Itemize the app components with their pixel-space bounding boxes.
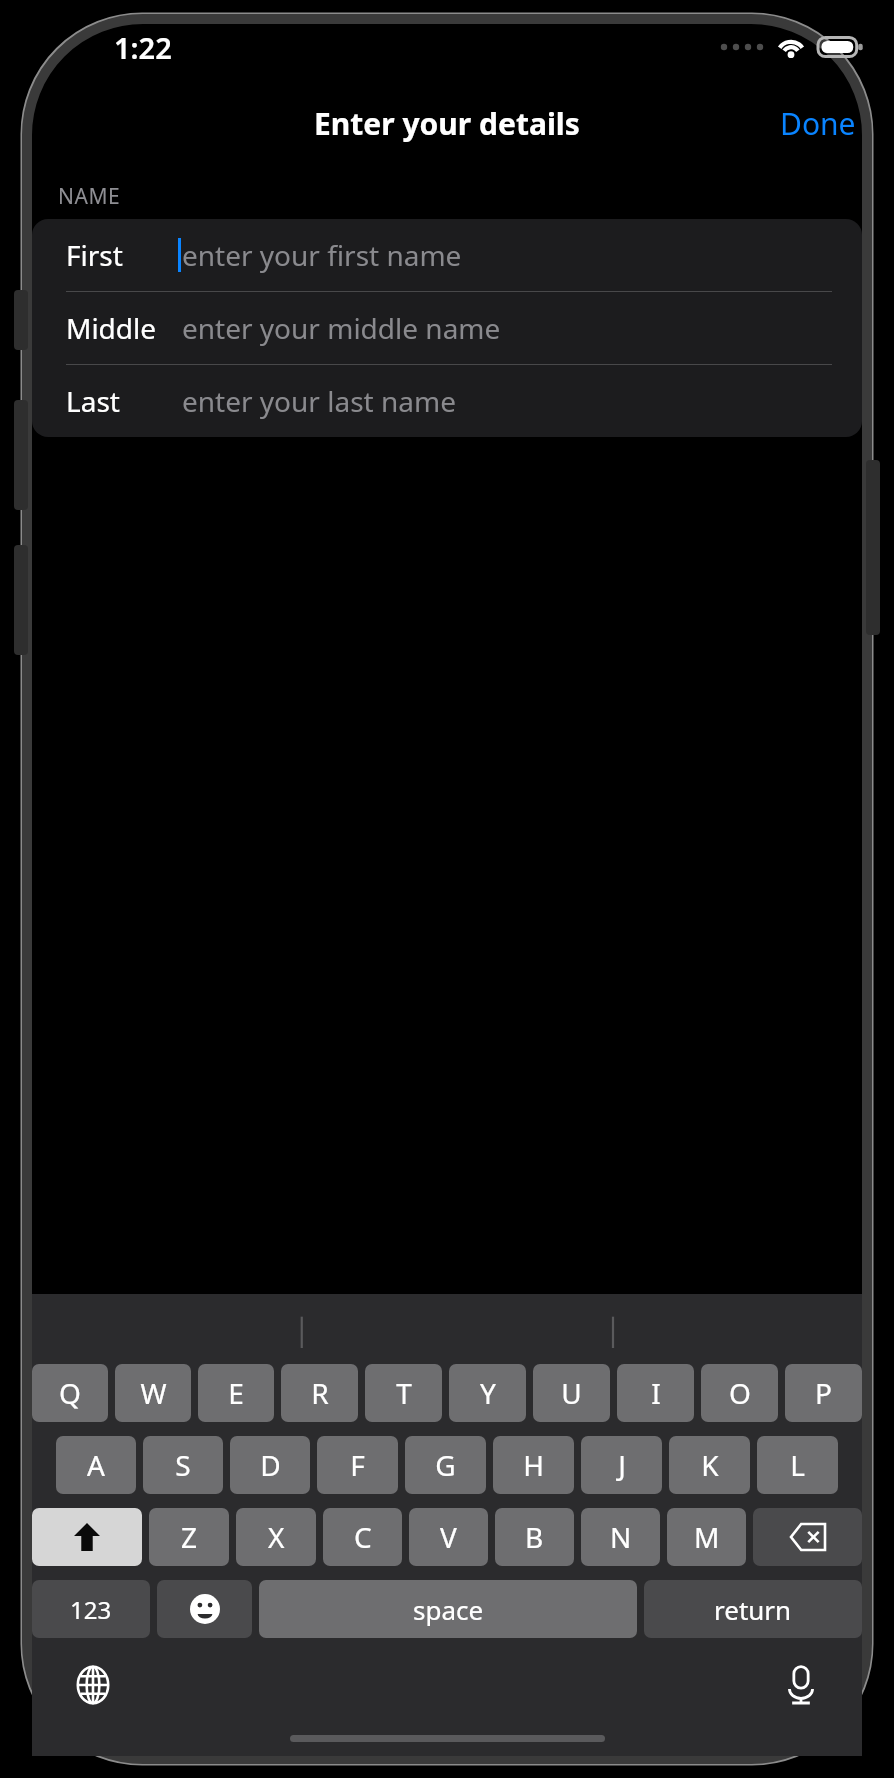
staticText: U [561, 1374, 582, 1412]
staticText: return [714, 1592, 792, 1627]
button[interactable]: Done [774, 99, 862, 148]
staticText: Done [780, 103, 856, 144]
button[interactable]: N [581, 1508, 660, 1566]
button[interactable]: M [667, 1508, 746, 1566]
staticText: First [66, 236, 123, 274]
staticText: B [525, 1518, 544, 1556]
staticText: enter your first name [182, 236, 462, 274]
button[interactable]: First [32, 219, 862, 291]
button[interactable]: G [405, 1436, 486, 1494]
button[interactable]: 123 [32, 1580, 150, 1638]
staticText: J [618, 1446, 626, 1484]
staticText: E [228, 1374, 244, 1412]
staticText: Q [59, 1374, 81, 1412]
button[interactable]: Middle [32, 292, 862, 364]
button[interactable]: Shift [32, 1508, 142, 1566]
button[interactable]: A [56, 1436, 136, 1494]
staticText: F [350, 1446, 365, 1484]
staticText: S [175, 1446, 191, 1484]
staticText: H [523, 1446, 544, 1484]
staticText: Middle [66, 309, 157, 347]
button[interactable]: S [143, 1436, 223, 1494]
staticText: enter your middle name [182, 309, 501, 347]
staticText: T [396, 1374, 412, 1412]
staticText: W [140, 1374, 167, 1412]
staticText: R [311, 1374, 329, 1412]
button[interactable]: Last [32, 365, 862, 437]
staticText: space [413, 1592, 484, 1627]
button[interactable]: Emoji [157, 1580, 252, 1638]
button[interactable]: Y [449, 1364, 526, 1422]
staticText: K [701, 1446, 719, 1484]
staticText: D [260, 1446, 281, 1484]
staticText: V [440, 1518, 457, 1556]
button[interactable]: Backspace [753, 1508, 862, 1566]
staticText: Y [480, 1374, 496, 1412]
button[interactable]: Dictation [774, 1658, 828, 1712]
button[interactable]: space [259, 1580, 637, 1638]
button[interactable]: I [617, 1364, 694, 1422]
button[interactable]: X [236, 1508, 316, 1566]
staticText: NAME [58, 182, 121, 211]
button[interactable]: Q [32, 1364, 108, 1422]
staticText: C [354, 1518, 372, 1556]
button[interactable]: P [785, 1364, 862, 1422]
button[interactable]: T [365, 1364, 442, 1422]
button[interactable]: V [409, 1508, 488, 1566]
button[interactable]: Change keyboard [66, 1658, 120, 1712]
staticText: P [815, 1374, 832, 1412]
button[interactable]: return [644, 1580, 862, 1638]
staticText: Enter your details [314, 103, 580, 144]
button[interactable]: H [493, 1436, 574, 1494]
staticText: M [694, 1518, 720, 1556]
staticText: A [87, 1446, 105, 1484]
button[interactable]: L [757, 1436, 838, 1494]
staticText: G [435, 1446, 456, 1484]
button[interactable]: U [533, 1364, 610, 1422]
button[interactable]: B [495, 1508, 574, 1566]
staticText: Last [66, 382, 120, 420]
staticText: Z [181, 1518, 198, 1556]
staticText: N [610, 1518, 632, 1556]
button[interactable]: C [323, 1508, 402, 1566]
button[interactable]: D [230, 1436, 310, 1494]
staticText: I [651, 1374, 661, 1412]
button[interactable]: Z [149, 1508, 229, 1566]
staticText: L [790, 1446, 805, 1484]
button[interactable]: J [581, 1436, 662, 1494]
button[interactable]: O [701, 1364, 778, 1422]
button[interactable]: R [281, 1364, 358, 1422]
staticText: enter your last name [182, 382, 456, 420]
staticText: 123 [70, 1593, 112, 1626]
staticText: X [268, 1518, 285, 1556]
button[interactable]: E [198, 1364, 274, 1422]
staticText: O [729, 1374, 751, 1412]
button[interactable]: F [317, 1436, 398, 1494]
button[interactable]: K [669, 1436, 750, 1494]
staticText: 1:22 [114, 28, 172, 67]
button[interactable]: W [115, 1364, 191, 1422]
